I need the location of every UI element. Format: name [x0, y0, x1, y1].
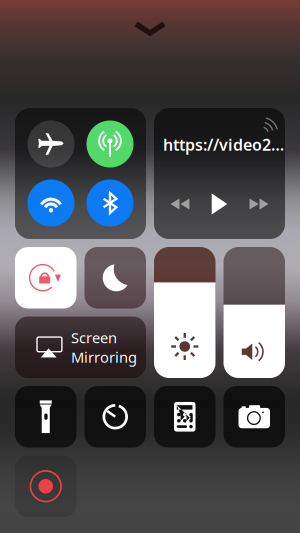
- staticText: https://video2…: [163, 134, 284, 155]
- button[interactable]: Play: [204, 192, 234, 216]
- staticText: Screen Mirroring: [71, 328, 137, 367]
- button[interactable]: Calculator: [154, 386, 215, 447]
- button[interactable]: Rewind: [165, 192, 195, 216]
- button[interactable]: Volume: [223, 247, 285, 378]
- button[interactable]: Brightness: [154, 247, 215, 378]
- button[interactable]: Bluetooth: [86, 179, 133, 226]
- button[interactable]: Do Not Disturb: [84, 247, 146, 308]
- button[interactable]: AirPlay: [262, 108, 285, 133]
- button[interactable]: Camera: [223, 386, 285, 447]
- button[interactable]: Cellular Data: [86, 120, 133, 167]
- button[interactable]: Fast Forward: [244, 192, 274, 216]
- button[interactable]: Timer: [84, 386, 146, 447]
- button[interactable]: Airplane Mode: [27, 120, 74, 167]
- button[interactable]: Flashlight: [15, 386, 76, 447]
- button[interactable]: Screen Mirroring: [15, 316, 146, 378]
- button[interactable]: Rotation Lock: [15, 247, 76, 308]
- button[interactable]: Wi-Fi: [27, 179, 74, 226]
- button[interactable]: Screen Recording: [15, 455, 76, 517]
